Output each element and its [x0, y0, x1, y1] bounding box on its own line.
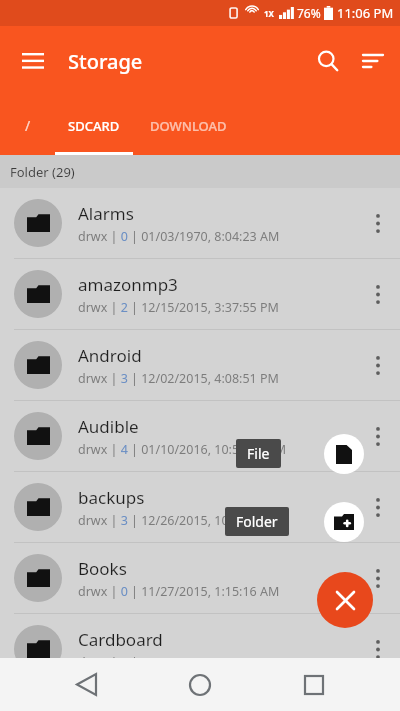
button[interactable]: Recent apps: [286, 658, 342, 711]
staticText: drwx | 0 | 01/03/1970, 8:04:23 AM: [78, 228, 280, 245]
staticText: drwx | 3 | 12/26/2015, 10:37:18 AM: [78, 512, 287, 529]
button[interactable]: Audible: [0, 401, 400, 472]
button[interactable]: More options: [356, 543, 400, 613]
staticText: amazonmp3: [78, 273, 178, 296]
staticText: DOWNLOAD: [150, 117, 227, 135]
button[interactable]: /: [0, 96, 55, 155]
button[interactable]: More options: [356, 401, 400, 471]
button[interactable]: File: [236, 439, 281, 468]
button[interactable]: More options: [356, 472, 400, 542]
button[interactable]: DOWNLOAD: [133, 96, 243, 155]
staticText: SDCARD: [68, 117, 120, 135]
button[interactable]: More options: [356, 259, 400, 329]
staticText: backups: [78, 486, 145, 509]
button[interactable]: More options: [356, 330, 400, 400]
staticText: 11:06 PM: [337, 4, 394, 22]
button[interactable]: New file: [324, 434, 364, 474]
button[interactable]: Alarms: [0, 188, 400, 259]
staticText: Android: [78, 344, 142, 367]
staticText: Books: [78, 557, 127, 580]
staticText: /: [25, 116, 31, 135]
button[interactable]: Close menu: [317, 572, 373, 628]
staticText: Folder (29): [10, 163, 75, 181]
button[interactable]: More options: [356, 188, 400, 258]
staticText: drwx | 4 | 01/10/2016, 10:55:54 PM: [78, 441, 287, 458]
staticText: 76%: [297, 5, 321, 21]
staticText: Storage: [68, 48, 143, 75]
button[interactable]: amazonmp3: [0, 259, 400, 330]
staticText: File: [247, 444, 270, 463]
staticText: Folder: [236, 512, 278, 531]
button[interactable]: Books: [0, 543, 400, 614]
button[interactable]: Sort: [352, 37, 394, 85]
button[interactable]: Home: [172, 658, 228, 711]
staticText: drwx | 2 | 12/15/2015, 3:37:55 PM: [78, 299, 279, 316]
button[interactable]: Back: [58, 658, 114, 711]
staticText: drwx | 1 | 10/04/2015, 9:12:40 AM: [78, 654, 280, 671]
button[interactable]: Open navigation drawer: [12, 40, 54, 82]
button[interactable]: More options: [356, 614, 400, 684]
staticText: drwx | 0 | 11/27/2015, 1:15:16 AM: [78, 583, 280, 600]
staticText: Cardboard: [78, 628, 163, 651]
button[interactable]: SDCARD: [55, 96, 133, 155]
button[interactable]: backups: [0, 472, 400, 543]
staticText: Alarms: [78, 202, 134, 225]
button[interactable]: Android: [0, 330, 400, 401]
button[interactable]: Folder: [225, 507, 289, 536]
staticText: drwx | 3 | 12/02/2015, 4:08:51 PM: [78, 370, 279, 387]
staticText: 1X: [264, 8, 274, 19]
button[interactable]: Cardboard: [0, 614, 400, 684]
button[interactable]: Search: [304, 37, 352, 85]
button[interactable]: New folder: [324, 502, 364, 542]
staticText: Audible: [78, 415, 139, 438]
